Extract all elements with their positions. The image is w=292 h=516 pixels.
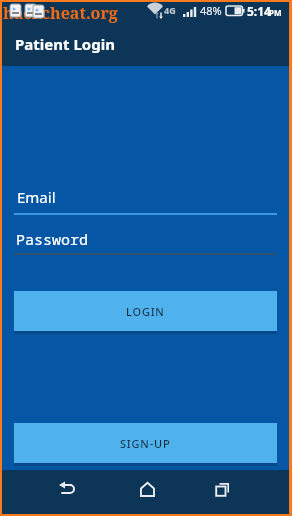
staticText: Password xyxy=(16,229,89,249)
button[interactable]: SIGN-UP xyxy=(14,423,277,463)
staticText: PM xyxy=(269,7,282,18)
staticText: Patient Login xyxy=(15,34,115,54)
staticText: 48% xyxy=(200,3,222,18)
staticText: 5:14 xyxy=(247,3,271,19)
staticText: hackcheat.org xyxy=(3,2,118,24)
staticText: SIGN-UP xyxy=(120,436,171,451)
staticText: Email xyxy=(17,187,56,207)
button[interactable] xyxy=(215,482,230,497)
staticText: LOGIN xyxy=(126,304,165,319)
button[interactable] xyxy=(58,481,75,498)
staticText: 4G xyxy=(164,4,176,16)
button[interactable] xyxy=(140,482,155,497)
button[interactable]: LOGIN xyxy=(14,291,277,331)
